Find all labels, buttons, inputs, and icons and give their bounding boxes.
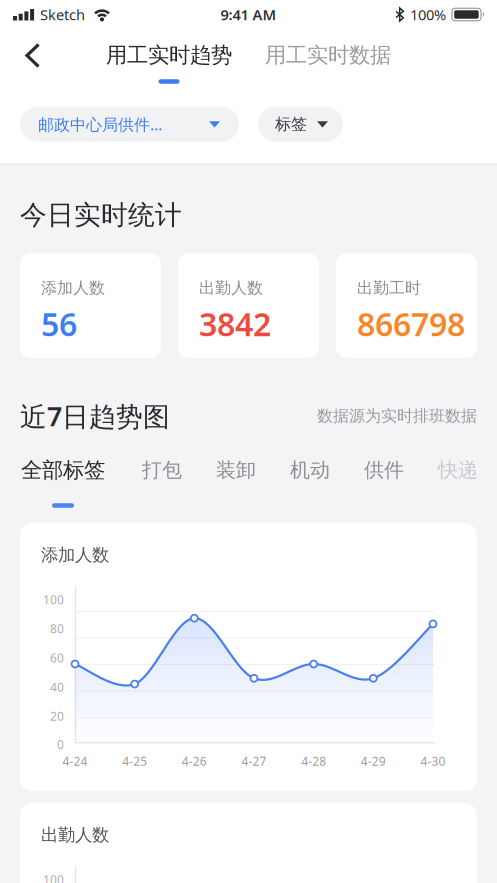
button[interactable]: 供件 [364,456,404,484]
staticText: 40 [50,679,64,695]
staticText: 4-30 [420,753,445,769]
staticText: 20 [50,708,64,724]
staticText: 4-28 [301,753,326,769]
staticText: 866798 [357,303,465,345]
button[interactable]: 出勤人数 [178,253,319,358]
staticText: 4-26 [182,753,207,769]
button[interactable]: 打包 [142,456,182,484]
staticText: 近7日趋势图 [20,398,170,434]
staticText: 数据源为实时排班数据 [317,406,477,426]
staticText: 100 [43,872,64,883]
staticText: 0 [57,736,64,752]
staticText: Sketch [40,5,85,24]
staticText: 3842 [199,303,271,345]
button[interactable]: 装卸 [216,456,256,484]
staticText: 今日实时统计 [20,199,182,231]
staticText: 打包 [142,458,182,482]
staticText: 标签 [275,114,307,134]
button[interactable]: Back [0,43,51,71]
staticText: 邮政中心局供件... [38,114,162,135]
button[interactable]: 邮政中心局供件... [20,107,239,142]
staticText: 添加人数 [41,278,105,298]
staticText: 4-24 [62,753,87,769]
staticText: 添加人数 [41,544,109,566]
button[interactable]: 添加人数 [20,253,161,358]
staticText: 出勤人数 [41,824,109,846]
button[interactable]: 机动 [290,456,330,484]
staticText: 9:41 AM [220,5,276,24]
staticText: 56 [41,303,77,345]
staticText: 4-25 [122,753,147,769]
staticText: 用工实时趋势 [106,42,232,68]
button[interactable]: 出勤工时 [336,253,477,358]
staticText: 全部标签 [21,457,105,483]
button[interactable]: 用工实时数据 [265,43,391,84]
staticText: 出勤人数 [199,278,263,298]
staticText: 机动 [290,458,330,482]
staticText: 4-27 [241,753,266,769]
button[interactable]: 标签 [258,107,343,142]
staticText: 出勤工时 [357,278,421,298]
staticText: 100% [410,5,446,24]
staticText: 60 [50,650,64,666]
staticText: 4-29 [361,753,386,769]
staticText: 100 [43,592,64,607]
button[interactable]: 全部标签 [18,456,108,508]
button[interactable]: 快递 [438,456,478,484]
staticText: 用工实时数据 [265,42,391,68]
staticText: 快递 [438,458,478,482]
staticText: 80 [50,621,64,637]
button[interactable]: 用工实时趋势 [106,43,232,84]
staticText: 装卸 [216,458,256,482]
staticText: 供件 [364,458,404,482]
